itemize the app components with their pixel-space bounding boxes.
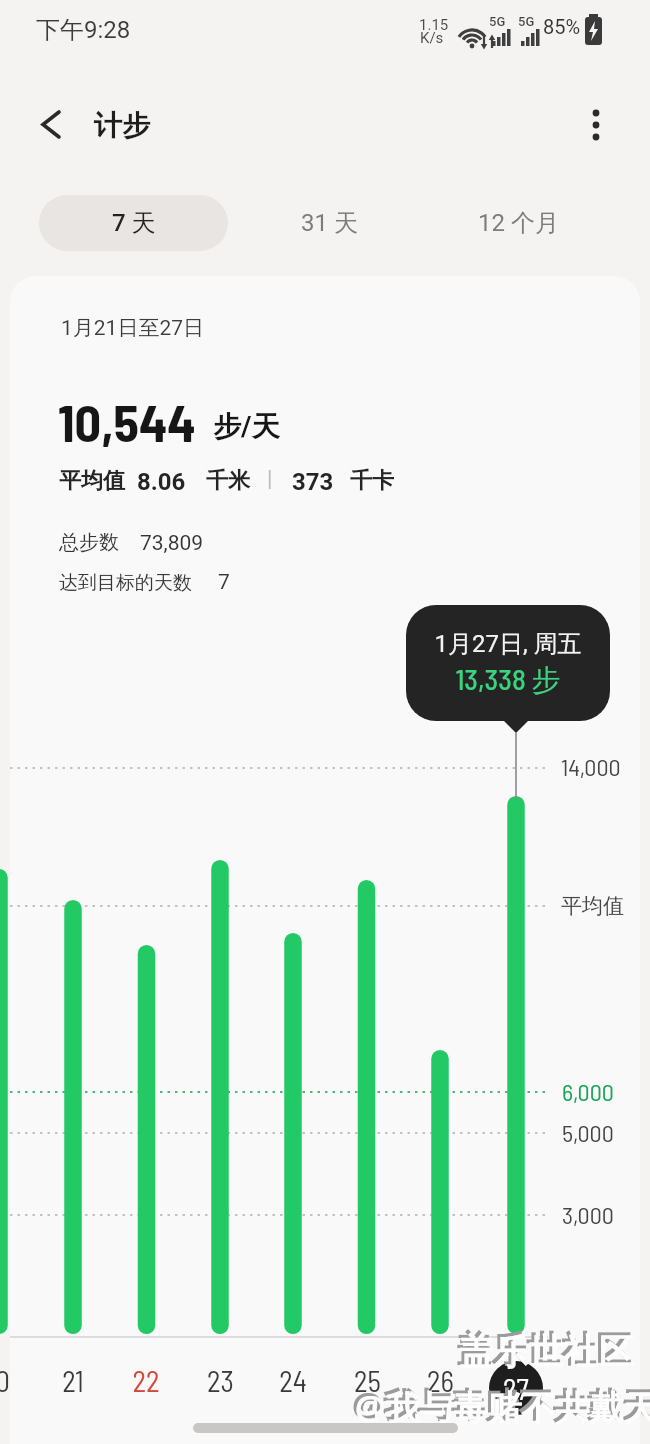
staticText: 步/天 — [213, 409, 280, 444]
staticText: 6,000 — [562, 1077, 614, 1106]
staticText: 平均值 — [59, 467, 125, 495]
staticText: 千米 — [206, 467, 250, 495]
staticText: 22 — [132, 1363, 160, 1398]
staticText: 总步数 — [59, 530, 119, 555]
staticText: 下午9:28 — [36, 15, 131, 45]
staticText: 21 — [62, 1363, 84, 1398]
staticText: 373 — [292, 468, 334, 496]
staticText: 1月27日, 周五 — [434, 629, 582, 659]
button[interactable]: 7 天 — [39, 195, 228, 251]
staticText: K/s — [420, 29, 444, 47]
button[interactable]: 31 天 — [269, 195, 389, 251]
staticText: 85% — [543, 15, 581, 38]
staticText: 8.06 — [137, 468, 186, 496]
staticText: 25 — [354, 1363, 381, 1398]
staticText: 12 个月 — [478, 208, 559, 238]
button[interactable]: 12 个月 — [448, 195, 588, 251]
button[interactable] — [30, 102, 74, 146]
staticText: 27 — [503, 1371, 529, 1406]
staticText: 3,000 — [562, 1200, 614, 1229]
staticText: 5G — [489, 14, 506, 29]
staticText: 平均值 — [561, 893, 624, 919]
staticText: 7 天 — [112, 208, 156, 238]
staticText: 26 — [427, 1363, 454, 1398]
staticText: 24 — [279, 1363, 307, 1398]
staticText: 计步 — [94, 108, 150, 143]
staticText: 1.15 — [419, 16, 449, 34]
staticText: 10,544 — [58, 390, 196, 452]
button[interactable] — [578, 102, 618, 148]
staticText: 盖乐世社区 — [456, 1327, 631, 1371]
staticText: 14,000 — [561, 752, 621, 781]
staticText: @我与毒赌不共戴天 — [352, 1381, 650, 1427]
staticText: @我与毒赌不共戴天 — [355, 1384, 650, 1430]
staticText: 73,809 — [140, 531, 204, 556]
staticText: 盖乐世社区 — [459, 1330, 634, 1374]
button[interactable]: 27 — [489, 1361, 543, 1415]
staticText: 5,000 — [562, 1118, 614, 1147]
staticText: 7 — [218, 570, 230, 595]
staticText: 达到目标的天数 — [59, 571, 192, 595]
staticText: 23 — [207, 1363, 234, 1398]
staticText: 0 — [0, 1363, 10, 1398]
staticText: 31 天 — [301, 208, 358, 238]
staticText: 千卡 — [350, 467, 394, 495]
staticText: 1月21日至27日 — [61, 315, 205, 341]
staticText: 13,338 步 — [455, 661, 561, 699]
staticText: | — [267, 466, 273, 492]
staticText: 5G — [518, 14, 535, 29]
